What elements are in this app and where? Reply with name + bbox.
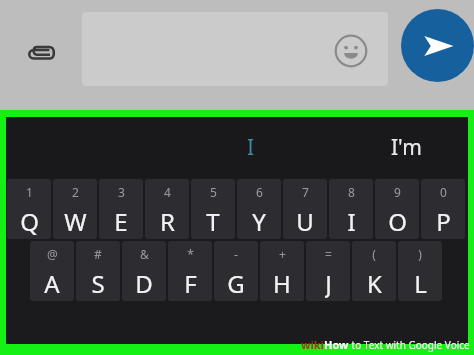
staticText: =	[325, 246, 332, 262]
button[interactable]: 8	[329, 179, 373, 239]
staticText: U	[296, 205, 314, 237]
staticText: D	[135, 267, 153, 299]
staticText: 8	[348, 184, 355, 200]
staticText: Y	[252, 205, 266, 237]
button[interactable]: +	[260, 241, 304, 301]
staticText: E	[114, 205, 128, 237]
staticText: I	[347, 205, 356, 237]
button[interactable]: Emoji	[330, 30, 372, 72]
button[interactable]: 6	[237, 179, 281, 239]
staticText: 3	[118, 184, 125, 200]
staticText: )	[418, 246, 422, 262]
button[interactable]: 9	[375, 179, 419, 239]
button[interactable]: )	[398, 241, 442, 301]
staticText: P	[436, 205, 451, 237]
staticText: 6	[256, 184, 263, 200]
button[interactable]: 0	[421, 179, 465, 239]
button[interactable]: -	[214, 241, 258, 301]
staticText: &	[140, 246, 149, 262]
staticText: -	[234, 246, 238, 262]
staticText: O	[388, 205, 407, 237]
button[interactable]: #	[76, 241, 120, 301]
button[interactable]: Send	[401, 9, 474, 82]
staticText: wiki	[301, 337, 324, 352]
button[interactable]: 1	[7, 179, 51, 239]
staticText: to Text with Google Voice	[349, 338, 470, 352]
staticText: F	[184, 267, 197, 299]
button[interactable]: *	[168, 241, 212, 301]
staticText: H	[273, 267, 291, 299]
staticText: K	[367, 267, 382, 299]
staticText: Q	[20, 205, 39, 237]
button[interactable]: 3	[99, 179, 143, 239]
staticText: S	[91, 267, 105, 299]
staticText: R	[160, 205, 175, 237]
staticText: 1	[26, 184, 33, 200]
button[interactable]: 4	[145, 179, 189, 239]
button[interactable]: &	[122, 241, 166, 301]
button[interactable]	[82, 12, 388, 86]
button[interactable]: =	[306, 241, 350, 301]
button[interactable]: @	[30, 241, 74, 301]
staticText: (	[372, 246, 376, 262]
staticText: How	[324, 337, 349, 352]
staticText: J	[325, 267, 332, 299]
button[interactable]: 2	[53, 179, 97, 239]
staticText: L	[414, 267, 427, 299]
staticText: W	[64, 205, 87, 237]
staticText: 4	[164, 184, 171, 200]
staticText: +	[279, 246, 286, 262]
staticText: I	[247, 133, 255, 162]
button[interactable]: I	[196, 117, 306, 178]
button[interactable]: 7	[283, 179, 327, 239]
button[interactable]: (	[352, 241, 396, 301]
staticText: 0	[440, 184, 447, 200]
staticText: *	[187, 246, 194, 262]
staticText: @	[47, 246, 58, 262]
button[interactable]: 5	[191, 179, 235, 239]
staticText: 5	[210, 184, 217, 200]
staticText: G	[227, 267, 245, 299]
staticText: 9	[394, 184, 401, 200]
staticText: #	[94, 246, 102, 262]
staticText: I'm	[391, 133, 422, 162]
staticText: T	[206, 205, 220, 237]
button[interactable]: I'm	[351, 117, 461, 178]
staticText: A	[44, 267, 60, 299]
staticText: 7	[302, 184, 309, 200]
button[interactable]: Attach	[14, 26, 68, 80]
staticText: 2	[72, 184, 79, 200]
